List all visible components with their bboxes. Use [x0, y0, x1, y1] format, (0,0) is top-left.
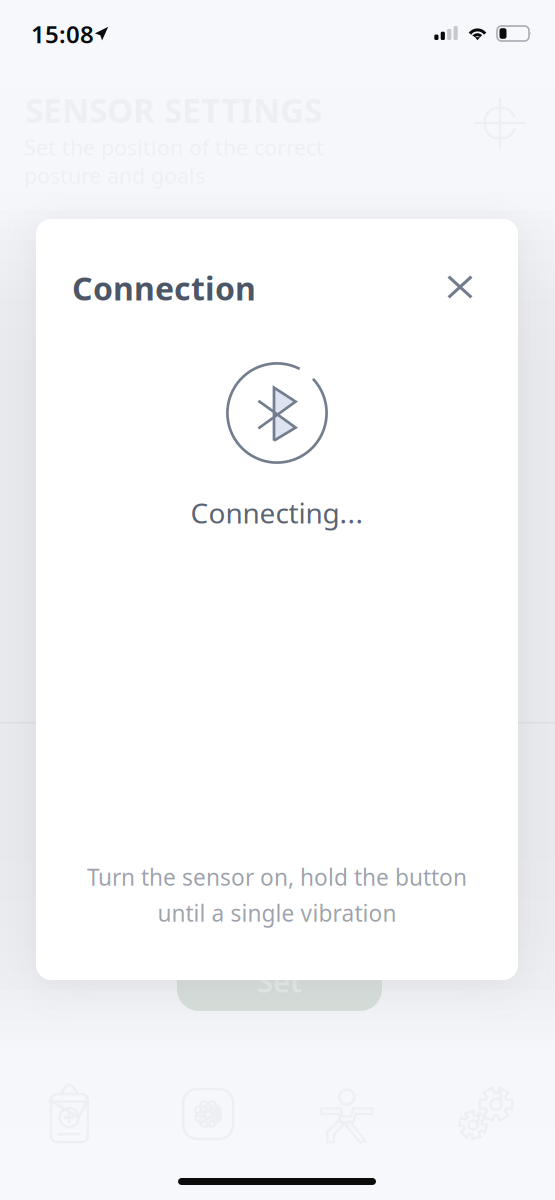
staticText: Connecting... — [190, 494, 363, 531]
staticText: Set — [257, 961, 302, 1000]
staticText: 15:08 — [31, 18, 94, 50]
staticText: SENSOR SETTINGS — [25, 88, 322, 132]
staticText: Connection — [72, 267, 256, 309]
button[interactable]: Set — [177, 951, 382, 1011]
staticText: until a single vibration — [157, 898, 396, 928]
staticText: Turn the sensor on, hold the button — [87, 862, 467, 892]
button[interactable]: Close — [435, 263, 485, 311]
